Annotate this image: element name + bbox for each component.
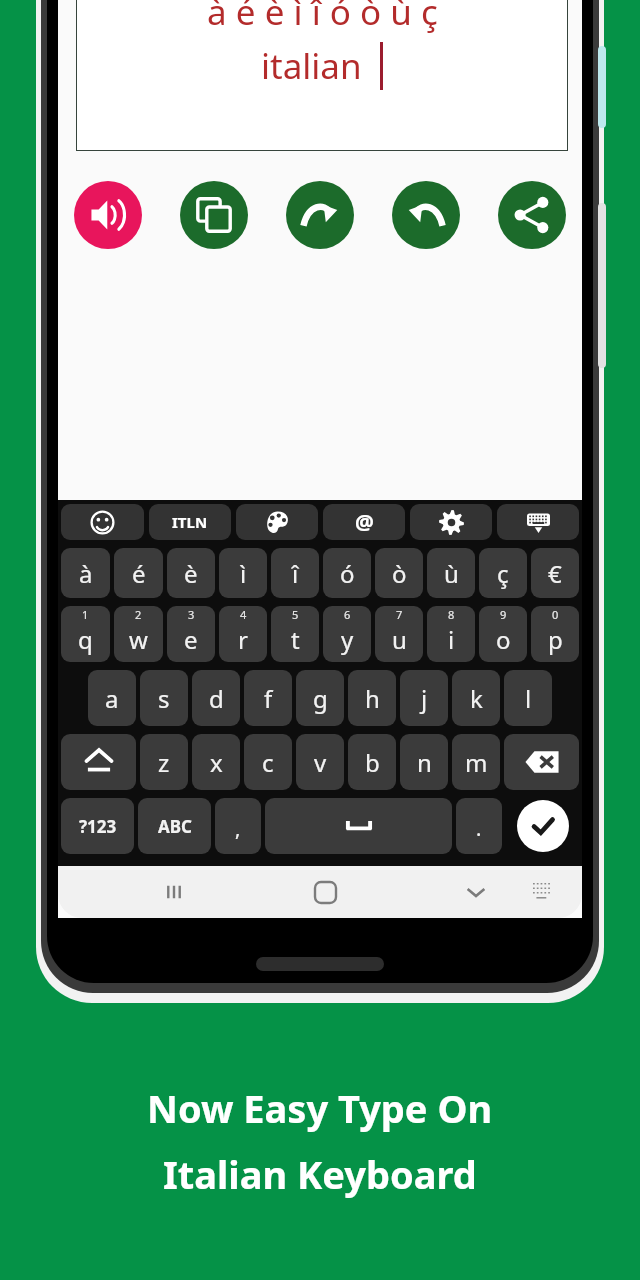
staticText: x	[210, 746, 223, 779]
staticText: .	[476, 815, 482, 842]
button[interactable]: 1	[61, 606, 110, 662]
button[interactable]: @	[323, 504, 405, 540]
button[interactable]: ITLN	[149, 504, 231, 540]
button[interactable]: n	[400, 734, 448, 790]
button[interactable]: Settings	[410, 504, 492, 540]
button[interactable]: Space	[265, 798, 452, 854]
staticText: e	[184, 623, 198, 656]
button[interactable]: h	[348, 670, 396, 726]
button[interactable]: Share	[498, 181, 566, 249]
button[interactable]: 7	[375, 606, 423, 662]
staticText: è	[184, 557, 198, 590]
staticText: m	[465, 746, 488, 779]
staticText: ó	[340, 557, 355, 590]
button[interactable]: m	[452, 734, 500, 790]
staticText: à é è ì î ó ò ù ç	[207, 0, 438, 36]
staticText: t	[291, 623, 300, 656]
button[interactable]: î	[271, 548, 319, 598]
button[interactable]: 8	[427, 606, 475, 662]
staticText: ?123	[79, 815, 117, 838]
staticText: é	[132, 557, 146, 590]
button[interactable]: ò	[375, 548, 423, 598]
staticText: c	[262, 746, 274, 779]
staticText: i	[448, 623, 455, 656]
staticText: h	[365, 682, 380, 715]
button[interactable]: ç	[479, 548, 527, 598]
button[interactable]: c	[244, 734, 292, 790]
staticText: s	[158, 682, 170, 715]
button[interactable]: Hide keyboard	[452, 868, 500, 916]
button[interactable]: Home	[301, 868, 349, 916]
staticText: €	[548, 557, 562, 590]
staticText: 6	[344, 607, 351, 622]
staticText: n	[417, 746, 432, 779]
button[interactable]: a	[88, 670, 136, 726]
button[interactable]: 0	[531, 606, 579, 662]
staticText: 7	[396, 607, 403, 622]
staticText: g	[313, 682, 328, 715]
button[interactable]: ó	[323, 548, 371, 598]
staticText: ITLN	[172, 512, 208, 532]
button[interactable]: Choose keyboard	[518, 868, 566, 916]
button[interactable]: 3	[167, 606, 215, 662]
button[interactable]: à	[61, 548, 110, 598]
staticText: z	[158, 746, 170, 779]
staticText: v	[314, 746, 327, 779]
button[interactable]: ,	[215, 798, 261, 854]
staticText: ò	[392, 557, 407, 590]
button[interactable]: f	[244, 670, 292, 726]
button[interactable]: .	[456, 798, 502, 854]
staticText: @	[355, 508, 374, 537]
staticText: j	[421, 682, 428, 715]
button[interactable]: ?123	[61, 798, 134, 854]
button[interactable]: 6	[323, 606, 371, 662]
button[interactable]: Shift	[61, 734, 136, 790]
button[interactable]: Undo	[392, 181, 460, 249]
button[interactable]: l	[504, 670, 552, 726]
button[interactable]: g	[296, 670, 344, 726]
staticText: o	[496, 623, 511, 656]
button[interactable]: Redo	[286, 181, 354, 249]
button[interactable]: d	[192, 670, 240, 726]
button[interactable]: Enter	[517, 800, 569, 852]
button[interactable]: j	[400, 670, 448, 726]
button[interactable]: é	[114, 548, 163, 598]
staticText: q	[78, 623, 93, 656]
button[interactable]: è	[167, 548, 215, 598]
button[interactable]: v	[296, 734, 344, 790]
button[interactable]: Recents	[150, 868, 198, 916]
staticText: ABC	[158, 815, 192, 838]
button[interactable]: s	[140, 670, 188, 726]
button[interactable]: Theme	[236, 504, 318, 540]
staticText: ì	[240, 557, 247, 590]
button[interactable]: Emoji	[61, 504, 144, 540]
staticText: 5	[292, 607, 299, 622]
button[interactable]: Copy	[180, 181, 248, 249]
staticText: d	[209, 682, 224, 715]
staticText: f	[264, 682, 273, 715]
staticText: 9	[500, 607, 507, 622]
button[interactable]: ì	[219, 548, 267, 598]
button[interactable]: Speak	[74, 181, 142, 249]
button[interactable]: x	[192, 734, 240, 790]
staticText: w	[129, 623, 148, 656]
button[interactable]: 9	[479, 606, 527, 662]
button[interactable]: ABC	[138, 798, 211, 854]
staticText: r	[238, 623, 248, 656]
button[interactable]: z	[140, 734, 188, 790]
button[interactable]: ù	[427, 548, 475, 598]
staticText: u	[392, 623, 407, 656]
button[interactable]: 5	[271, 606, 319, 662]
button[interactable]: Backspace	[504, 734, 579, 790]
button[interactable]: 2	[114, 606, 163, 662]
button[interactable]: €	[531, 548, 579, 598]
button[interactable]: 4	[219, 606, 267, 662]
staticText: l	[525, 682, 532, 715]
button[interactable]: Switch keyboard	[497, 504, 579, 540]
button[interactable]: b	[348, 734, 396, 790]
staticText: 2	[135, 607, 142, 622]
staticText: ù	[444, 557, 459, 590]
staticText: î	[292, 557, 299, 590]
button[interactable]: k	[452, 670, 500, 726]
staticText: p	[548, 623, 563, 656]
